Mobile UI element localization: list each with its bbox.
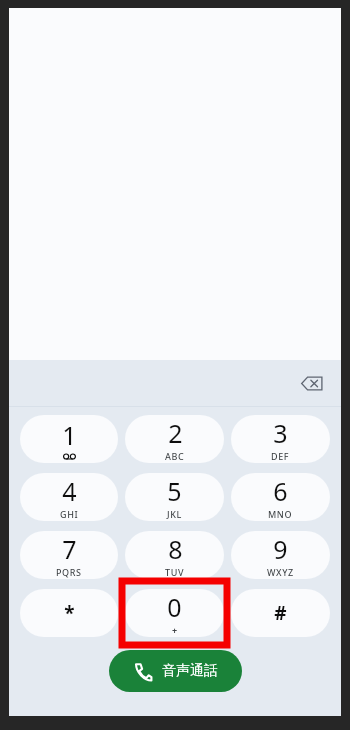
staticText: TUV xyxy=(165,566,185,578)
staticText: 4 xyxy=(62,474,77,508)
staticText: 1 xyxy=(62,418,77,452)
button[interactable]: * xyxy=(20,589,118,637)
button[interactable]: 1 xyxy=(20,415,118,463)
staticText: WXYZ xyxy=(267,566,294,578)
staticText: 6 xyxy=(273,474,288,508)
staticText: MNO xyxy=(268,508,293,520)
staticText: 3 xyxy=(273,416,288,450)
button[interactable]: 0 xyxy=(125,589,224,637)
staticText: GHI xyxy=(60,508,79,520)
button[interactable]: 2 xyxy=(125,415,224,463)
staticText: 9 xyxy=(273,532,288,566)
staticText: 7 xyxy=(62,532,77,566)
button[interactable]: 7 xyxy=(20,531,118,579)
staticText: JKL xyxy=(167,508,182,520)
button[interactable]: Backspace xyxy=(295,366,329,400)
button[interactable]: 3 xyxy=(231,415,330,463)
staticText: + xyxy=(172,624,178,636)
button[interactable]: # xyxy=(231,589,330,637)
button[interactable]: 音声通話 xyxy=(109,650,242,692)
staticText: 8 xyxy=(168,532,183,566)
staticText: 音声通話 xyxy=(162,662,218,680)
staticText: DEF xyxy=(271,450,290,462)
button[interactable]: 9 xyxy=(231,531,330,579)
staticText: PQRS xyxy=(56,566,82,578)
staticText: ABC xyxy=(165,450,185,462)
button[interactable]: 6 xyxy=(231,473,330,521)
button[interactable]: 4 xyxy=(20,473,118,521)
staticText: 2 xyxy=(168,416,183,450)
staticText: 0 xyxy=(167,590,182,624)
staticText: * xyxy=(64,600,75,626)
staticText: # xyxy=(274,600,287,626)
button[interactable]: 8 xyxy=(125,531,224,579)
staticText: 5 xyxy=(167,474,182,508)
button[interactable]: 5 xyxy=(125,473,224,521)
